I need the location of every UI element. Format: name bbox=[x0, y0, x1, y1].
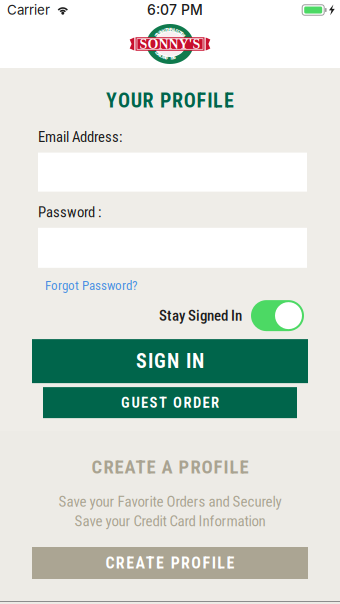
staticText: CREATE A PROFILE bbox=[91, 456, 248, 478]
staticText: L bbox=[160, 53, 162, 58]
staticText: YOUR PROFILE bbox=[106, 89, 234, 112]
staticText: A bbox=[182, 33, 185, 39]
staticText: B bbox=[158, 52, 161, 58]
staticText: T bbox=[157, 51, 159, 56]
staticText: A bbox=[156, 32, 159, 37]
staticText: GUEST ORDER bbox=[121, 394, 219, 411]
staticText: A bbox=[159, 30, 162, 35]
staticText: E bbox=[169, 27, 171, 32]
staticText: T bbox=[156, 33, 158, 38]
staticText: L bbox=[157, 31, 159, 37]
staticText: N bbox=[160, 29, 163, 34]
staticText bbox=[172, 27, 173, 33]
staticText: SIGN IN bbox=[136, 349, 204, 373]
staticText: H bbox=[163, 55, 166, 60]
staticText: CREATE PROFILE bbox=[106, 554, 234, 572]
staticText: R bbox=[180, 32, 183, 37]
staticText: Z bbox=[179, 30, 181, 35]
staticText: E bbox=[165, 55, 167, 60]
staticText: SONNY'S bbox=[139, 36, 200, 52]
staticText: & bbox=[173, 28, 176, 33]
staticText: S bbox=[156, 50, 158, 56]
staticText: 6:07 PM bbox=[147, 1, 203, 18]
staticText: 6 bbox=[173, 55, 175, 60]
staticText: Carrier bbox=[7, 2, 50, 18]
staticText: H bbox=[167, 27, 170, 33]
staticText: I bbox=[182, 32, 183, 38]
staticText: 1 bbox=[170, 55, 172, 61]
staticText: Stay Signed In bbox=[159, 307, 242, 324]
staticText bbox=[162, 29, 163, 34]
staticText bbox=[175, 28, 176, 33]
staticText: E bbox=[180, 31, 182, 36]
staticText: A bbox=[158, 52, 161, 57]
staticText: P bbox=[175, 28, 178, 34]
staticText bbox=[169, 55, 170, 61]
staticText: K bbox=[162, 28, 165, 33]
staticText: N bbox=[170, 27, 173, 33]
staticText: T bbox=[165, 28, 167, 33]
staticText: I bbox=[162, 54, 163, 59]
button[interactable]: SIGN IN bbox=[32, 339, 308, 383]
button[interactable]: CREATE PROFILE bbox=[32, 547, 308, 579]
staticText: I bbox=[156, 34, 157, 39]
staticText: D bbox=[165, 55, 168, 60]
staticText: I bbox=[159, 30, 160, 36]
staticText: Save your Credit Card Information bbox=[74, 512, 265, 530]
staticText: 8 bbox=[172, 55, 174, 60]
staticText: S bbox=[162, 54, 164, 59]
button[interactable]: Stay Signed In bbox=[251, 300, 304, 331]
button[interactable]: GUEST ORDER bbox=[43, 387, 297, 418]
button[interactable]: Forgot Password? bbox=[38, 268, 138, 293]
staticText: C bbox=[166, 27, 169, 33]
staticText: Forgot Password? bbox=[45, 278, 138, 293]
staticText: Email Address: bbox=[38, 128, 122, 146]
staticText: I bbox=[177, 29, 178, 34]
staticText: Password : bbox=[38, 204, 101, 221]
staticText: Save your Favorite Orders and Securely bbox=[58, 493, 281, 510]
staticText: I bbox=[165, 28, 166, 33]
staticText: 9 bbox=[171, 55, 173, 61]
staticText: Z bbox=[178, 29, 180, 35]
staticText: E bbox=[156, 49, 158, 55]
